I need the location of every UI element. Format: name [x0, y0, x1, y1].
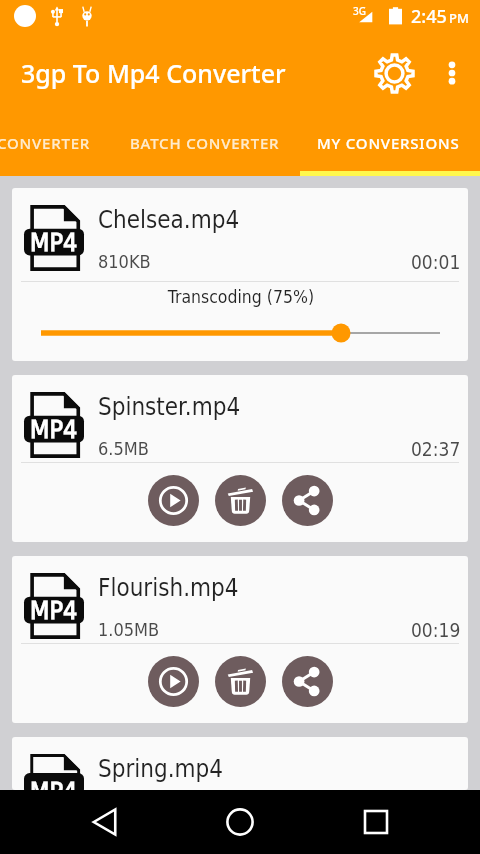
staticText: Chelsea.mp4	[98, 206, 240, 234]
staticText: 1.05MB	[98, 619, 160, 640]
staticText: MY CONVERSIONS	[317, 133, 460, 153]
staticText: 3G	[353, 4, 366, 18]
staticText: Spring.mp4	[98, 755, 224, 783]
button[interactable]: More options	[429, 50, 475, 96]
button[interactable]: BATCH CONVERTER	[114, 114, 295, 171]
button[interactable]: MP4	[12, 737, 468, 790]
staticText: 02:37	[411, 438, 461, 460]
staticText: MP4	[30, 596, 78, 625]
button[interactable]: Home	[208, 790, 272, 854]
button[interactable]: MY CONVERSIONS	[300, 114, 477, 171]
staticText: 2:45	[411, 4, 447, 29]
button[interactable]: Delete	[215, 475, 266, 526]
staticText: 810KB	[98, 251, 151, 272]
button[interactable]: Play	[148, 475, 199, 526]
button[interactable]: Settings	[370, 49, 418, 97]
staticText: 00:19	[411, 619, 461, 641]
staticText: Flourish.mp4	[98, 574, 239, 602]
staticText: PM	[449, 9, 469, 27]
staticText: BATCH CONVERTER	[130, 133, 280, 153]
button[interactable]: Recents	[344, 790, 408, 854]
staticText: Transcoding (75%)	[13, 287, 468, 307]
button[interactable]: Delete	[215, 656, 266, 707]
staticText: CONVERTER	[0, 133, 91, 153]
button[interactable]: MP4	[12, 556, 468, 723]
staticText: 00:01	[411, 251, 461, 273]
button[interactable]: CONVERTER	[0, 114, 132, 171]
button[interactable]: Back	[72, 790, 136, 854]
staticText: 3gp To Mp4 Converter	[21, 56, 286, 90]
staticText: MP4	[30, 777, 78, 790]
staticText: MP4	[30, 228, 78, 257]
button[interactable]: MP4	[12, 188, 468, 361]
button[interactable]: Share	[282, 656, 333, 707]
button[interactable]: Play	[148, 656, 199, 707]
staticText: 6.5MB	[98, 438, 149, 459]
staticText: Spinster.mp4	[98, 393, 241, 421]
staticText: MP4	[30, 415, 78, 444]
button[interactable]: Share	[282, 475, 333, 526]
button[interactable]: MP4	[12, 375, 468, 542]
